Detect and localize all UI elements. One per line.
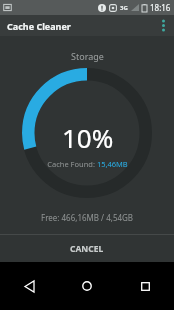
button[interactable]: CANCEL [0,235,174,262]
button[interactable]: More options [152,15,174,36]
staticText: 18:16 [150,2,171,13]
staticText: Free: 466,16MB / 4,54GB [41,212,134,223]
staticText: Storage [71,50,104,62]
button[interactable]: Recent apps [116,262,174,310]
staticText: CANCEL [70,243,104,255]
staticText: Cache Cleaner [7,20,71,32]
staticText: 3G [120,4,128,12]
staticText: 10% [62,120,114,155]
button[interactable]: Back [0,262,58,310]
button[interactable]: Home [58,262,116,310]
staticText: Cache Found: 15,46MB [47,159,128,169]
